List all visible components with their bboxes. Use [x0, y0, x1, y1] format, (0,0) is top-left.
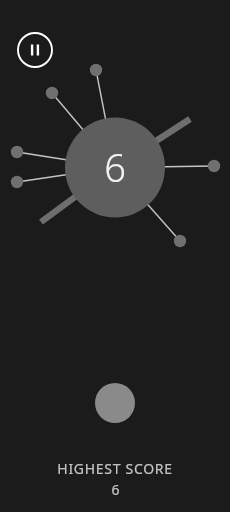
staticText: HIGHEST SCORE	[57, 459, 173, 478]
button[interactable]: Pause	[16, 31, 54, 69]
staticText: 6	[104, 141, 126, 193]
staticText: 6	[111, 480, 120, 499]
